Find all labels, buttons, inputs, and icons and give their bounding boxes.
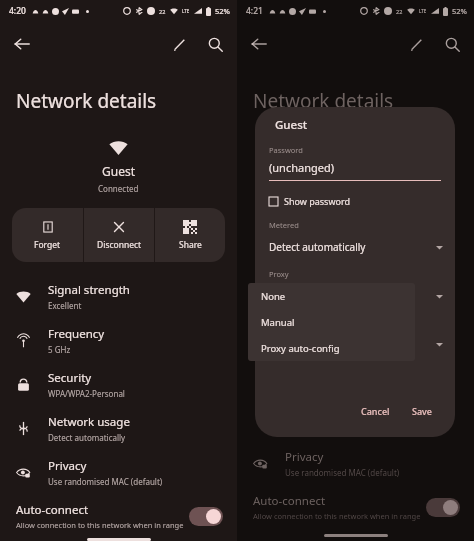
staticText: 4:21 [246, 5, 263, 17]
staticText: Detect automatically [269, 240, 436, 254]
button[interactable]: None [255, 284, 455, 308]
staticText: Detect automatically [48, 432, 126, 443]
button[interactable]: Manual [248, 309, 415, 335]
button[interactable]: Search [197, 26, 233, 62]
staticText: Frequency [48, 326, 105, 342]
staticText: Proxy auto-config [261, 342, 340, 355]
staticText: None [261, 290, 286, 303]
staticText: Network usage [48, 414, 130, 430]
staticText: Show password [284, 195, 350, 207]
button[interactable]: Save [404, 401, 441, 421]
staticText: 5 GHz [48, 344, 71, 355]
staticText: Connected [98, 183, 139, 194]
staticText: Proxy [269, 269, 289, 279]
staticText: 52% [452, 6, 467, 16]
staticText: Cancel [361, 405, 390, 417]
staticText: Forget [34, 239, 61, 251]
button[interactable]: Use device MAC [255, 332, 455, 356]
staticText: Signal strength [48, 282, 130, 298]
staticText: Use device MAC [269, 337, 436, 351]
staticText: Excellent [48, 300, 82, 311]
button[interactable]: Back [241, 26, 277, 62]
button[interactable]: None [248, 283, 415, 309]
staticText: Auto-connect [253, 493, 326, 509]
staticText: 52% [215, 6, 230, 16]
button[interactable]: Edit [398, 26, 434, 62]
button[interactable]: Network usage [0, 406, 237, 450]
button[interactable]: Back [4, 26, 40, 62]
staticText: 22 [396, 8, 403, 15]
button[interactable]: Privacy [237, 441, 474, 485]
button[interactable]: Frequency [0, 318, 237, 362]
staticText: WPA/WPA2-Personal [48, 388, 125, 399]
staticText: LTE [182, 8, 190, 14]
button[interactable]: Proxy auto-config [248, 335, 415, 361]
staticText: Privacy [285, 449, 324, 465]
staticText: Allow connection to this network when in… [16, 520, 184, 530]
staticText: Share [179, 239, 202, 251]
button[interactable]: Detect automatically [255, 235, 455, 259]
staticText: Use randomised MAC (default) [285, 467, 400, 478]
button[interactable]: Share [155, 208, 225, 262]
button[interactable]: Edit [161, 26, 197, 62]
staticText: LTE [419, 8, 427, 14]
staticText: Security [48, 370, 92, 386]
staticText: Metered [269, 220, 299, 230]
staticText: Save [412, 405, 433, 417]
button[interactable]: Privacy [0, 450, 237, 494]
button[interactable]: Auto-connect [237, 485, 474, 529]
staticText: Auto-connect [16, 502, 89, 518]
staticText: Privacy [48, 458, 87, 474]
staticText: Use randomised MAC (default) [48, 476, 163, 487]
button[interactable]: Cancel [353, 401, 398, 421]
staticText: Manual [261, 316, 295, 329]
staticText: Network details [16, 88, 157, 114]
staticText: Guest [102, 163, 136, 179]
staticText: Password [269, 145, 303, 155]
staticText: Guest [275, 117, 455, 133]
staticText: Disconnect [97, 239, 142, 251]
staticText: 4:20 [9, 5, 26, 17]
button[interactable]: Search [434, 26, 470, 62]
staticText: None [269, 289, 436, 303]
button[interactable]: Security [0, 362, 237, 406]
button[interactable]: Auto-connect [0, 494, 237, 538]
staticText: Network details [253, 88, 394, 114]
button[interactable]: Forget [12, 208, 83, 262]
staticText: (unchanged) [269, 160, 334, 175]
staticText: Privacy [269, 318, 295, 328]
button[interactable]: Signal strength [0, 274, 237, 318]
button[interactable]: Show password [269, 195, 350, 207]
staticText: Allow connection to this network when in… [253, 511, 421, 521]
button[interactable]: Disconnect [84, 208, 154, 262]
staticText: 22 [159, 8, 166, 15]
